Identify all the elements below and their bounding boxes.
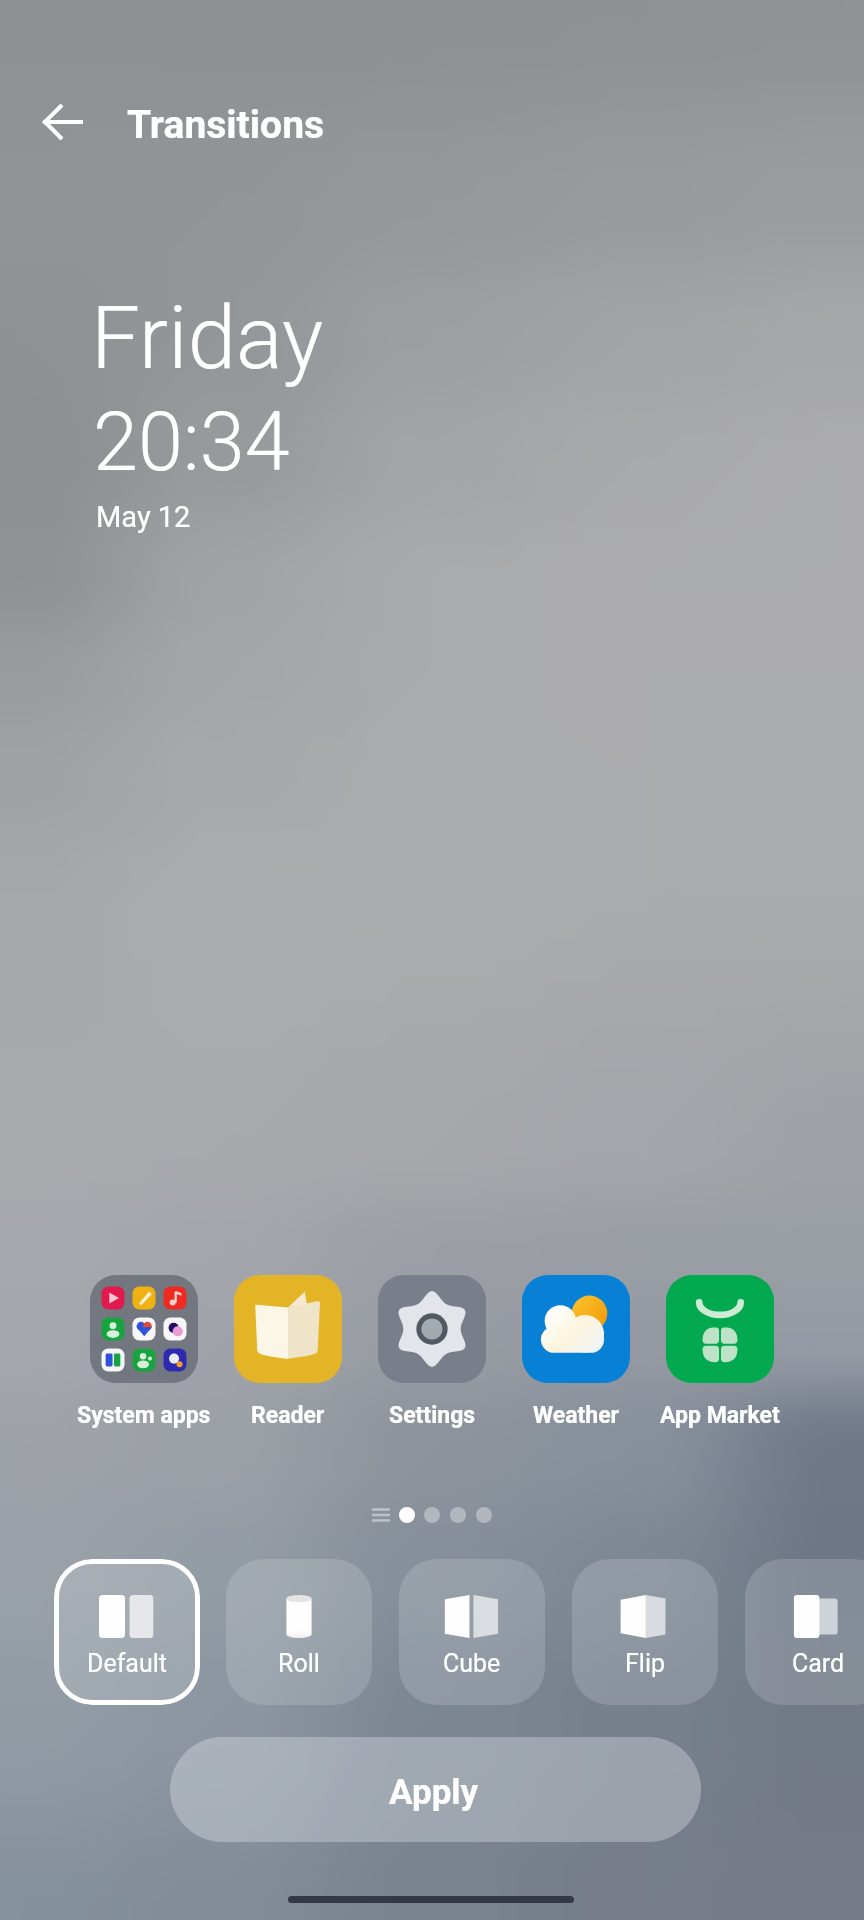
button[interactable] [378,1275,486,1383]
button[interactable]: Cube [399,1559,545,1705]
staticText: Transitions [127,102,325,148]
staticText: May 12 [96,500,191,534]
button[interactable] [90,1275,198,1383]
staticText: Reader [251,1402,325,1429]
staticText: Cube [443,1649,501,1678]
button[interactable]: Roll [226,1559,372,1705]
staticText: Card [792,1649,845,1678]
staticText: System apps [77,1402,211,1429]
staticText: App Market [660,1402,780,1429]
staticText: Roll [278,1649,320,1678]
button[interactable]: Apply [170,1737,701,1842]
staticText: Weather [533,1402,620,1429]
button[interactable] [234,1275,342,1383]
button[interactable]: Default [54,1559,200,1705]
button[interactable]: Flip [572,1559,718,1705]
button[interactable] [522,1275,630,1383]
button[interactable] [666,1275,774,1383]
staticText: Settings [389,1402,476,1429]
button[interactable]: Back [34,94,90,150]
staticText: Flip [625,1649,666,1678]
staticText: Default [87,1649,167,1678]
staticText: Friday [91,287,324,389]
staticText: Apply [389,1772,479,1813]
button[interactable]: Card [745,1559,864,1705]
staticText: 20:34 [93,395,290,490]
